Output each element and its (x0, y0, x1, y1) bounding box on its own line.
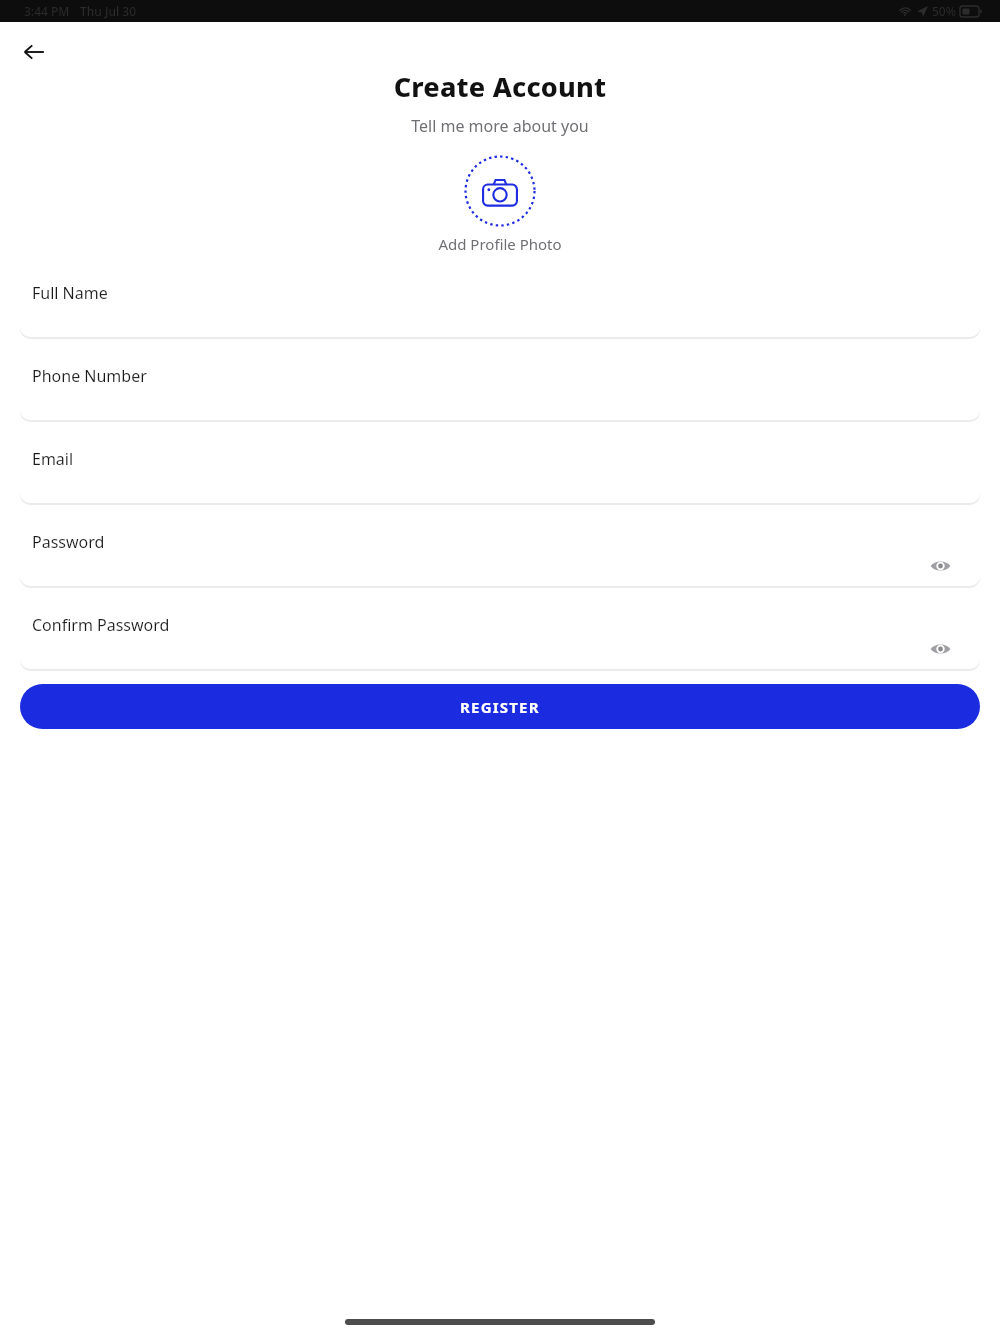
button[interactable]: REGISTER (20, 684, 980, 729)
button[interactable]: Full Name (20, 267, 980, 337)
staticText: Full Name (32, 282, 108, 304)
staticText: Thu Jul 30 (80, 3, 137, 19)
staticText: Create Account (0, 68, 1000, 105)
button[interactable]: Confirm Password (20, 599, 980, 669)
button[interactable]: Password (20, 516, 980, 586)
staticText: 50% (932, 3, 956, 19)
button[interactable]: Toggle password visibility (926, 552, 954, 580)
staticText: Tell me more about you (0, 115, 1000, 137)
staticText: REGISTER (460, 697, 540, 717)
staticText: Phone Number (32, 365, 147, 387)
staticText: Email (32, 448, 74, 470)
button[interactable]: Toggle password visibility (926, 635, 954, 663)
staticText: 3:44 PM (24, 3, 70, 19)
button[interactable]: Add Profile Photo (464, 155, 536, 227)
staticText: Password (32, 531, 105, 553)
staticText: Confirm Password (32, 614, 170, 636)
button[interactable]: Email (20, 433, 980, 503)
button[interactable]: Back (14, 32, 54, 72)
button[interactable]: Phone Number (20, 350, 980, 420)
staticText: Add Profile Photo (438, 234, 562, 254)
